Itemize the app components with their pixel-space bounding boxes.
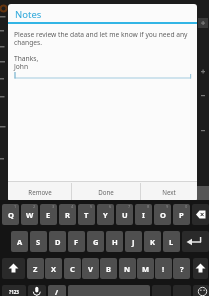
button[interactable]: S <box>30 231 47 252</box>
staticText: T <box>84 210 89 220</box>
button[interactable]: Remove <box>8 182 71 201</box>
button[interactable]: Done <box>71 182 140 201</box>
staticText: H <box>112 237 118 247</box>
staticText: ?123 <box>9 289 19 295</box>
button[interactable] <box>182 231 209 252</box>
staticText: / <box>55 287 59 296</box>
button[interactable]: Q <box>2 204 19 225</box>
staticText: V <box>88 264 93 274</box>
staticText: L <box>169 237 174 247</box>
staticText: Next <box>162 188 176 196</box>
staticText: F <box>74 237 79 247</box>
staticText: 5 <box>90 204 93 209</box>
staticText: 7 <box>128 204 131 209</box>
button[interactable]: O <box>154 204 171 225</box>
staticText: ? <box>180 264 184 274</box>
button[interactable]: M <box>137 258 154 279</box>
button[interactable]: Y <box>97 204 114 225</box>
staticText: K <box>150 237 155 247</box>
button[interactable]: X <box>45 258 62 279</box>
button[interactable]: R <box>59 204 76 225</box>
staticText: A <box>17 237 23 247</box>
staticText: 0 <box>185 204 188 209</box>
staticText: N <box>124 264 131 274</box>
staticText: Q <box>8 210 14 220</box>
staticText: C <box>70 264 75 274</box>
button[interactable]: G <box>87 231 104 252</box>
button[interactable]: P <box>173 204 190 225</box>
button[interactable]: U <box>116 204 133 225</box>
staticText: Remove <box>28 188 52 196</box>
button[interactable]: F <box>68 231 85 252</box>
staticText: Done <box>98 188 114 196</box>
staticText: M <box>142 264 150 274</box>
staticText: R <box>65 210 70 220</box>
staticText: G <box>93 237 99 247</box>
button[interactable]: / <box>48 285 66 296</box>
button[interactable]: ?123 <box>2 285 26 296</box>
staticText: Notes <box>15 8 42 21</box>
button[interactable] <box>192 204 209 225</box>
button[interactable]: ? <box>173 258 190 279</box>
button[interactable] <box>28 285 46 296</box>
button[interactable]: E <box>40 204 57 225</box>
staticText: 6 <box>109 204 112 209</box>
button[interactable]: C <box>64 258 81 279</box>
staticText: 8 <box>147 204 150 209</box>
button[interactable]: L <box>163 231 180 252</box>
button[interactable]: J <box>125 231 142 252</box>
button[interactable]: W <box>21 204 38 225</box>
staticText: J <box>132 237 135 247</box>
staticText: P <box>179 210 184 220</box>
button[interactable]: Z <box>27 258 44 279</box>
button[interactable]: D <box>49 231 66 252</box>
button[interactable] <box>193 258 208 279</box>
button[interactable]: V <box>82 258 99 279</box>
staticText: X <box>51 264 57 274</box>
staticText: S <box>36 237 41 247</box>
staticText: 3 <box>52 204 55 209</box>
button[interactable]: N <box>119 258 136 279</box>
staticText: Z <box>33 264 38 274</box>
button[interactable]: T <box>78 204 95 225</box>
staticText: 4 <box>71 204 74 209</box>
staticText: 2 <box>33 204 36 209</box>
staticText: B <box>106 264 111 274</box>
staticText: E <box>46 210 51 220</box>
staticText: U <box>122 210 128 220</box>
button[interactable]: A <box>11 231 28 252</box>
staticText: D <box>55 237 61 247</box>
button[interactable] <box>8 4 197 201</box>
button[interactable]: Next <box>140 182 197 201</box>
button[interactable]: I <box>135 204 152 225</box>
staticText: Y <box>103 210 108 220</box>
staticText: I <box>142 210 145 220</box>
button[interactable]: K <box>144 231 161 252</box>
button[interactable]: H <box>106 231 123 252</box>
button[interactable]: B <box>100 258 117 279</box>
button[interactable] <box>193 285 209 296</box>
button[interactable]: ! <box>155 258 172 279</box>
staticText: Please review the data and let me know i… <box>14 30 188 71</box>
staticText: W <box>26 210 34 220</box>
staticText: 1 <box>14 204 17 209</box>
staticText: 9 <box>166 204 169 209</box>
staticText: O <box>160 210 166 220</box>
staticText: ! <box>162 264 165 274</box>
button[interactable] <box>2 258 25 279</box>
